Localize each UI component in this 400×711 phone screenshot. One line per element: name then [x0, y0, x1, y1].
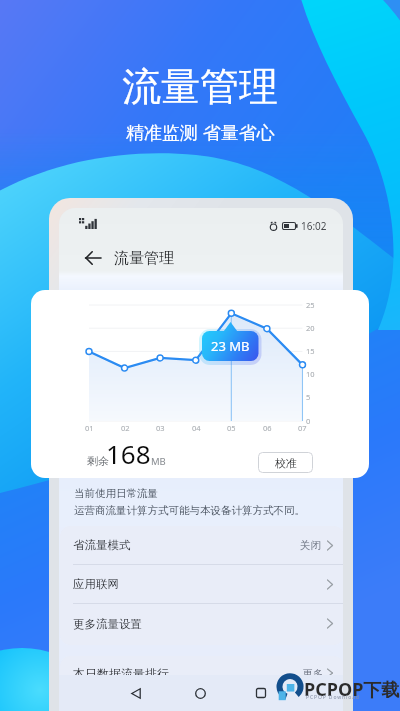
button[interactable]: 更多流量设置	[60, 604, 343, 643]
staticText: 07	[298, 423, 307, 433]
staticText: 运营商流量计算方式可能与本设备计算方式不同。	[74, 504, 305, 517]
button[interactable]: 校准	[258, 452, 313, 473]
staticText: 168	[106, 436, 151, 471]
staticText: MB	[151, 455, 166, 468]
staticText: 流量管理	[114, 249, 174, 268]
staticText: 0	[306, 416, 311, 426]
staticText: 20	[306, 323, 315, 333]
staticText: 25	[306, 300, 315, 310]
staticText: 23 MB	[211, 337, 250, 355]
staticText: 校准	[275, 456, 297, 470]
staticText: 02	[121, 423, 130, 433]
button[interactable]: Back	[118, 675, 154, 711]
staticText: 05	[227, 423, 236, 433]
staticText: 更多流量设置	[73, 617, 142, 631]
staticText: 更多	[303, 667, 323, 680]
staticText: 06	[263, 423, 272, 433]
staticText: 精准监测 省量省心	[126, 120, 275, 145]
staticText: 剩余	[87, 454, 109, 468]
staticText: 03	[156, 423, 165, 433]
staticText: 10	[306, 369, 315, 379]
staticText: 省流量模式	[73, 538, 131, 552]
staticText: 当前使用日常流量	[74, 487, 158, 500]
staticText: 04	[192, 423, 201, 433]
button[interactable]: 省流量模式	[60, 526, 343, 565]
staticText: PCPOP Download	[306, 694, 360, 701]
staticText: 关闭	[300, 539, 321, 552]
staticText: 01	[85, 423, 94, 433]
staticText: PCPOP下载	[304, 677, 400, 702]
button[interactable]: Back	[73, 241, 113, 275]
button[interactable]: Recents	[243, 675, 279, 711]
button[interactable]: Home	[182, 675, 218, 711]
staticText: 应用联网	[73, 577, 119, 591]
button[interactable]: 应用联网	[60, 565, 343, 604]
button[interactable]: 本日数据流量排行	[73, 656, 333, 690]
staticText: 16:02	[301, 219, 327, 233]
staticText: 本日数据流量排行	[73, 666, 169, 681]
staticText: 15	[306, 346, 315, 356]
staticText: 5	[306, 392, 311, 402]
staticText: 流量管理	[122, 62, 278, 111]
